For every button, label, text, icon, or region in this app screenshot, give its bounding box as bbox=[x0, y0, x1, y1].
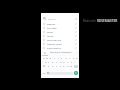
staticText: a bbox=[45, 61, 47, 64]
button[interactable]: l bbox=[73, 60, 76, 64]
staticText: netflix bbox=[47, 35, 54, 38]
staticText: r bbox=[54, 57, 55, 60]
button[interactable]: weather bbox=[43, 22, 77, 26]
staticText: m bbox=[70, 65, 73, 68]
staticText: k bbox=[71, 61, 73, 64]
staticText: new search suggestion bbox=[50, 51, 72, 54]
staticText: g bbox=[60, 61, 62, 64]
button[interactable]: b bbox=[62, 64, 65, 68]
staticText: Search bbox=[48, 17, 56, 20]
button[interactable]: weather today bbox=[43, 42, 77, 46]
staticText: j bbox=[67, 61, 68, 64]
button[interactable]: gmail bbox=[43, 30, 77, 34]
staticText: gmail bbox=[47, 31, 53, 34]
button[interactable]: n bbox=[66, 64, 69, 68]
staticText: About bbox=[42, 54, 48, 56]
button[interactable]: food near me bbox=[43, 38, 77, 42]
button[interactable]: Enter bbox=[74, 71, 78, 75]
button[interactable]: w bbox=[45, 56, 48, 60]
button[interactable]: g bbox=[59, 60, 62, 64]
staticText: food near me bbox=[47, 39, 61, 42]
button[interactable]: Symbols bbox=[42, 71, 46, 75]
staticText: e bbox=[50, 57, 52, 60]
button[interactable]: Search bbox=[43, 16, 77, 21]
button[interactable]: u bbox=[64, 56, 67, 60]
button[interactable]: p bbox=[75, 56, 78, 60]
staticText: weather bbox=[47, 23, 56, 26]
staticText: Made with bbox=[83, 19, 97, 23]
staticText: p bbox=[76, 57, 78, 60]
button[interactable]: x bbox=[51, 64, 54, 68]
staticText: b bbox=[63, 65, 65, 68]
button[interactable]: j bbox=[66, 60, 69, 64]
button[interactable]: f bbox=[55, 60, 58, 64]
button[interactable]: Shift bbox=[42, 64, 46, 68]
staticText: t bbox=[58, 57, 59, 60]
button[interactable]: q bbox=[42, 56, 45, 60]
button[interactable]: t bbox=[57, 56, 60, 60]
staticText: weather today bbox=[47, 43, 62, 46]
button[interactable]: m bbox=[70, 64, 73, 68]
staticText: o bbox=[73, 57, 75, 60]
button[interactable]: k bbox=[70, 60, 73, 64]
button[interactable]: d bbox=[51, 60, 54, 64]
staticText: h bbox=[63, 61, 65, 64]
button[interactable]: s bbox=[47, 60, 50, 64]
button[interactable]: Emoji bbox=[46, 71, 49, 75]
button[interactable]: bbc news bbox=[43, 26, 77, 30]
staticText: KINEMASTER bbox=[97, 19, 118, 23]
staticText: y bbox=[61, 57, 63, 60]
staticText: d bbox=[52, 61, 54, 64]
staticText: c bbox=[56, 65, 58, 68]
staticText: x bbox=[52, 65, 54, 68]
staticText: w bbox=[46, 57, 48, 60]
button[interactable]: h bbox=[62, 60, 65, 64]
staticText: z bbox=[48, 65, 50, 68]
button[interactable]: o bbox=[72, 56, 75, 60]
button[interactable]: z bbox=[47, 64, 50, 68]
staticText: bbc news bbox=[47, 27, 57, 30]
staticText: n bbox=[67, 65, 69, 68]
staticText: u bbox=[65, 57, 67, 60]
staticText: q bbox=[43, 57, 45, 60]
button[interactable]: a bbox=[44, 60, 47, 64]
button[interactable]: train times uk bbox=[43, 46, 77, 50]
button[interactable]: e bbox=[49, 56, 52, 60]
button[interactable]: r bbox=[53, 56, 56, 60]
button[interactable]: c bbox=[55, 64, 58, 68]
button[interactable]: y bbox=[60, 56, 63, 60]
button[interactable]: i bbox=[68, 56, 71, 60]
staticText: v bbox=[60, 65, 62, 68]
staticText: train times uk bbox=[47, 47, 62, 50]
staticText: f bbox=[56, 61, 57, 64]
staticText: ?123 bbox=[42, 72, 46, 74]
other: Search bbox=[43, 17, 46, 20]
button[interactable]: netflix bbox=[43, 34, 77, 38]
button[interactable]: v bbox=[59, 64, 62, 68]
staticText: s bbox=[48, 61, 50, 64]
staticText: i bbox=[69, 57, 70, 60]
staticText: l bbox=[74, 61, 75, 64]
